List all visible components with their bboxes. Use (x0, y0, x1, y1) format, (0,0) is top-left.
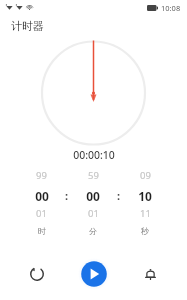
button[interactable]: 00 (22, 187, 61, 204)
button[interactable]: 09 (125, 168, 165, 183)
staticText: 秒 (141, 226, 149, 236)
staticText: 分 (89, 226, 97, 236)
button[interactable]: 59 (73, 168, 113, 183)
staticText: 99 (36, 169, 47, 182)
staticText: 计时器 (11, 19, 44, 33)
button[interactable]: Ringtone (139, 263, 161, 285)
button[interactable]: Reset (26, 263, 48, 285)
staticText: 00 (35, 188, 49, 204)
staticText: 10:08 (161, 3, 181, 13)
button[interactable]: 99 (22, 168, 61, 183)
button[interactable]: Start (78, 258, 110, 290)
staticText: 01 (88, 207, 99, 220)
staticText: 11 (140, 207, 151, 220)
button[interactable]: 10 (125, 187, 165, 204)
staticText: 时 (38, 226, 46, 236)
staticText: 00:00:10 (73, 148, 115, 162)
button[interactable]: 11 (125, 206, 165, 221)
button[interactable]: 01 (22, 206, 61, 221)
button[interactable]: 01 (73, 206, 113, 221)
staticText: 00 (86, 188, 100, 204)
staticText: 09 (140, 169, 151, 182)
staticText: 59 (88, 169, 99, 182)
button[interactable]: 00 (73, 187, 113, 204)
staticText: : (65, 188, 69, 203)
staticText: 10 (138, 188, 152, 204)
staticText: : (117, 188, 121, 203)
staticText: 01 (36, 207, 47, 220)
